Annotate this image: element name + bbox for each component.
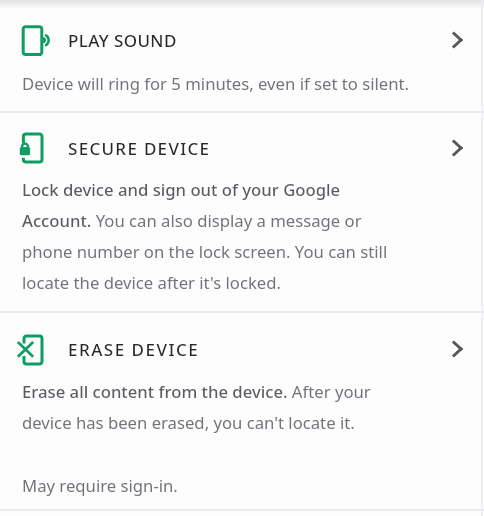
staticText: Lock device and sign out of your Google … [22,178,452,294]
button[interactable]: ERASE DEVICE [0,325,484,373]
staticText: PLAY SOUND [68,29,177,52]
button[interactable]: PLAY SOUND [0,16,484,64]
staticText: Device will ring for 5 minutes, even if … [22,72,410,95]
staticText: ERASE DEVICE [68,338,200,361]
staticText: SECURE DEVICE [68,137,211,160]
button[interactable]: SECURE DEVICE [0,124,484,172]
staticText: Erase all content from the device. After… [22,380,452,434]
staticText: May require sign-in. [22,474,178,497]
